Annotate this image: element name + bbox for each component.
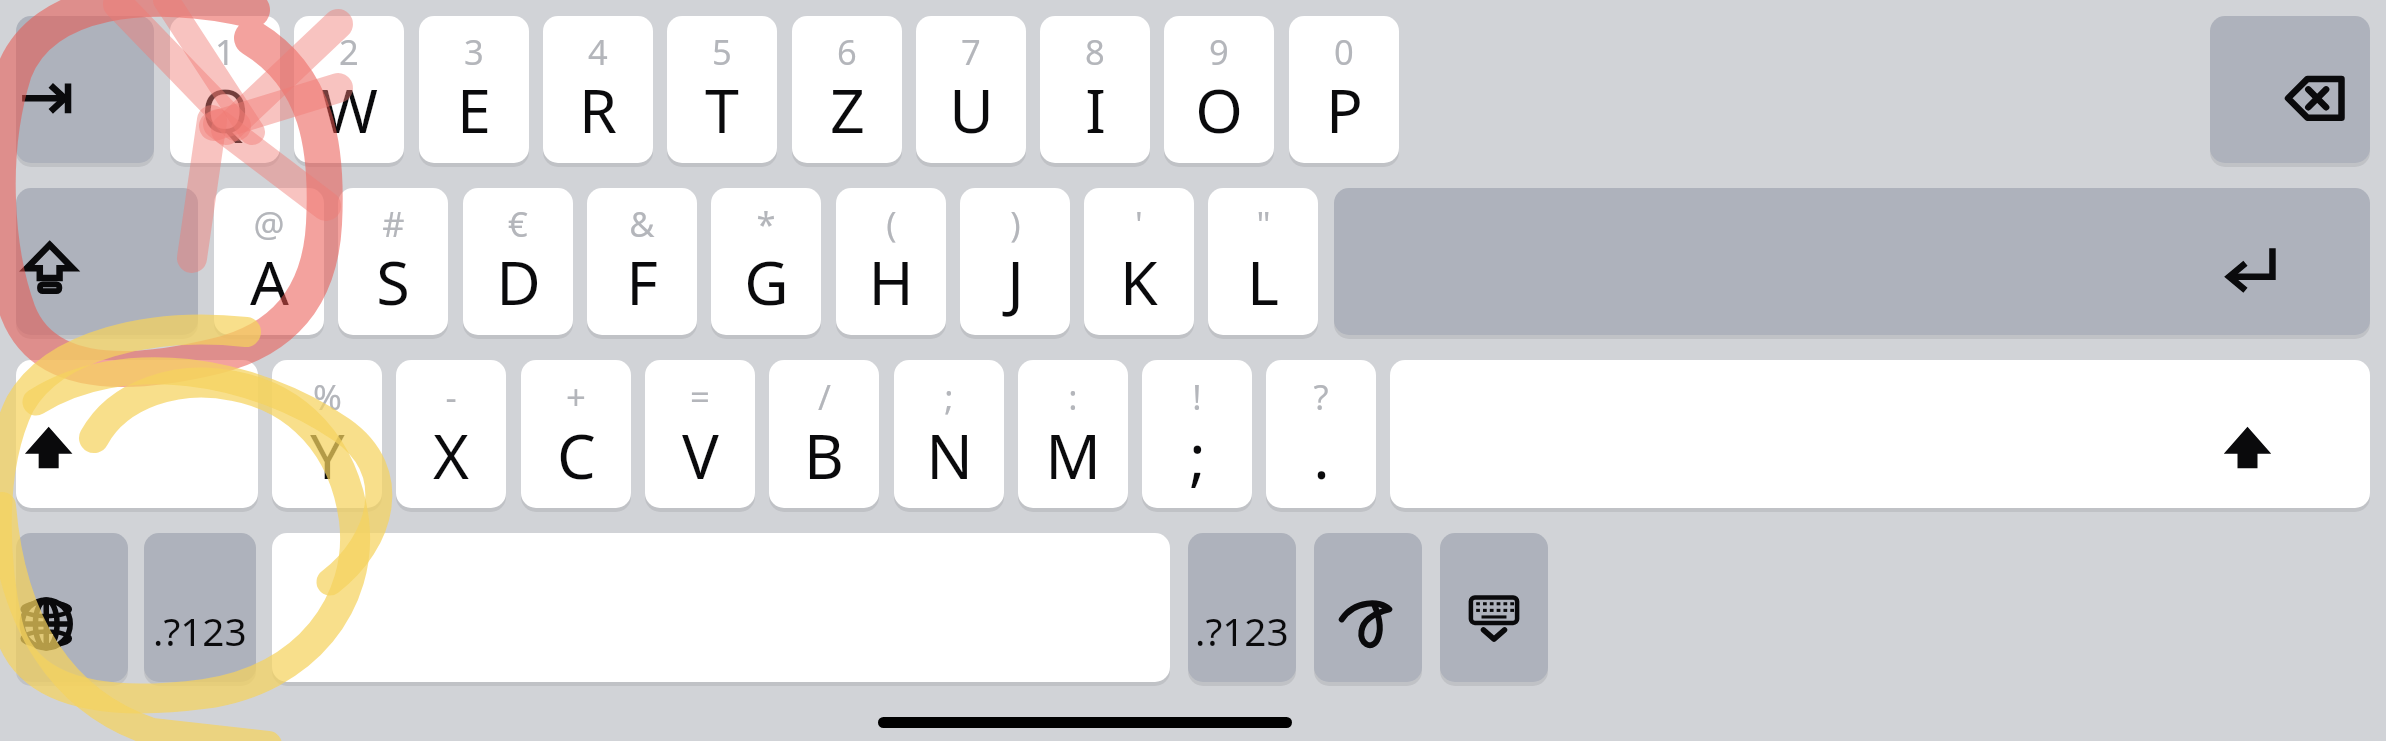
staticText: N — [926, 413, 973, 497]
button[interactable]: Handwriting — [1314, 533, 1422, 682]
staticText: B — [804, 413, 844, 497]
button[interactable]: P — [1289, 16, 1399, 163]
button[interactable]: O — [1164, 16, 1274, 163]
button[interactable]: W — [294, 16, 404, 163]
button[interactable]: X — [396, 360, 506, 508]
button[interactable]: H — [836, 188, 946, 335]
staticText: .?123 — [153, 605, 247, 658]
button[interactable]: Tab — [16, 16, 154, 163]
staticText: 6 — [837, 28, 857, 75]
staticText: M — [1045, 413, 1101, 497]
button[interactable]: E — [419, 16, 529, 163]
button[interactable]: .?123 — [1188, 533, 1296, 682]
button[interactable]: K — [1084, 188, 1194, 335]
staticText: ; — [1189, 413, 1206, 497]
staticText: 4 — [588, 28, 608, 75]
staticText: X — [433, 413, 469, 497]
staticText: - — [445, 373, 457, 420]
staticText: .?123 — [1195, 605, 1289, 658]
staticText: 1 — [215, 28, 235, 75]
staticText: D — [496, 240, 541, 323]
button[interactable]: Space — [272, 533, 1170, 682]
button[interactable]: Shift — [16, 360, 258, 508]
staticText: & — [629, 200, 655, 247]
button[interactable]: .?123 — [144, 533, 256, 682]
staticText: @ — [253, 200, 285, 247]
button[interactable]: Backspace — [2210, 16, 2370, 163]
button[interactable]: L — [1208, 188, 1318, 335]
staticText: 5 — [712, 28, 732, 75]
staticText: 9 — [1209, 28, 1229, 75]
button[interactable]: D — [463, 188, 573, 335]
staticText: / — [818, 373, 831, 420]
staticText: K — [1120, 240, 1158, 323]
button[interactable]: A — [214, 188, 324, 335]
staticText: A — [250, 240, 289, 323]
button[interactable]: Change keyboard — [16, 533, 128, 682]
staticText: # — [382, 200, 405, 247]
staticText: I — [1085, 68, 1106, 151]
staticText: S — [376, 240, 410, 323]
button[interactable]: C — [521, 360, 631, 508]
button[interactable]: Q — [170, 16, 280, 163]
button[interactable]: V — [645, 360, 755, 508]
staticText: F — [626, 240, 658, 323]
staticText: R — [579, 68, 617, 151]
button[interactable]: R — [543, 16, 653, 163]
staticText: ( — [886, 200, 897, 247]
button[interactable]: Z — [792, 16, 902, 163]
staticText: ) — [1010, 200, 1021, 247]
button[interactable]: I — [1040, 16, 1150, 163]
staticText: W — [321, 68, 378, 151]
staticText: ? — [1313, 373, 1329, 420]
staticText: J — [1007, 240, 1024, 323]
button[interactable]: J — [960, 188, 1070, 335]
button[interactable]: U — [916, 16, 1026, 163]
button[interactable]: Caps Lock — [16, 188, 198, 335]
staticText: = — [690, 373, 710, 420]
button[interactable]: Return — [1334, 188, 2370, 335]
staticText: + — [566, 373, 586, 420]
staticText: 0 — [1334, 28, 1354, 75]
staticText: G — [744, 240, 789, 323]
staticText: ! — [1192, 373, 1202, 420]
staticText: H — [868, 240, 914, 323]
staticText: T — [705, 68, 739, 151]
staticText: ' — [1135, 200, 1143, 247]
staticText: % — [313, 373, 342, 420]
staticText: 7 — [961, 28, 981, 75]
button[interactable]: N — [894, 360, 1004, 508]
staticText: 2 — [339, 28, 359, 75]
button[interactable]: F — [587, 188, 697, 335]
staticText: Y — [310, 413, 345, 497]
button[interactable]: Hide keyboard — [1440, 533, 1548, 682]
staticText: " — [1256, 200, 1271, 247]
staticText: O — [1195, 68, 1243, 151]
staticText: 3 — [464, 28, 484, 75]
staticText: 8 — [1085, 28, 1105, 75]
button[interactable]: Y — [272, 360, 382, 508]
staticText: Q — [201, 68, 249, 151]
staticText: ; — [944, 373, 954, 420]
staticText: E — [457, 68, 491, 151]
staticText: P — [1326, 68, 1363, 151]
button[interactable]: ; — [1142, 360, 1252, 508]
button[interactable]: M — [1018, 360, 1128, 508]
staticText: * — [756, 200, 776, 247]
button[interactable]: Shift — [1390, 360, 2370, 508]
staticText: Z — [830, 68, 865, 151]
staticText: € — [508, 200, 528, 247]
staticText: . — [1313, 413, 1330, 497]
staticText: : — [1068, 373, 1078, 420]
button[interactable]: T — [667, 16, 777, 163]
staticText: U — [949, 68, 994, 151]
button[interactable]: G — [711, 188, 821, 335]
staticText: L — [1247, 240, 1279, 323]
button[interactable]: . — [1266, 360, 1376, 508]
button[interactable]: S — [338, 188, 448, 335]
staticText: V — [682, 413, 719, 497]
button[interactable]: B — [769, 360, 879, 508]
staticText: C — [557, 413, 596, 497]
